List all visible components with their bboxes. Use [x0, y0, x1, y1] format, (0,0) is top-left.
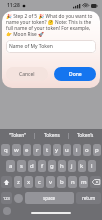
button[interactable]: h	[58, 160, 66, 172]
staticText: j	[71, 162, 73, 170]
staticText: s	[20, 162, 23, 170]
staticText: b	[60, 178, 64, 186]
button[interactable]: return	[76, 192, 101, 204]
staticText: Done	[69, 71, 82, 78]
button[interactable]: Cancel	[6, 67, 48, 81]
staticText: c	[38, 178, 41, 186]
staticText: m	[81, 178, 87, 186]
staticText: k	[80, 162, 84, 170]
staticText: q	[4, 146, 8, 154]
staticText: d	[30, 162, 34, 170]
button[interactable]: s	[17, 160, 26, 172]
button[interactable]: Token’s	[69, 129, 102, 142]
button[interactable]: a	[6, 160, 15, 172]
button[interactable]: j	[68, 160, 76, 172]
button[interactable]: e	[23, 144, 31, 156]
button[interactable]: m	[79, 176, 88, 188]
staticText: x	[27, 178, 31, 186]
staticText: t	[46, 146, 49, 154]
staticText: v	[49, 178, 53, 186]
button[interactable]: i	[73, 144, 81, 156]
staticText: Token’s	[77, 132, 94, 139]
staticText: n	[71, 178, 75, 186]
staticText: space	[43, 195, 56, 201]
staticText: u	[65, 146, 69, 154]
staticText: f	[41, 162, 44, 170]
button[interactable]: d	[28, 160, 36, 172]
staticText: w	[14, 146, 19, 154]
button[interactable]: k	[78, 160, 86, 172]
staticText: 11:28	[7, 2, 20, 9]
staticText: “Token”	[9, 132, 26, 139]
staticText: e	[25, 146, 29, 154]
staticText: 🎉 Step 2 of 5 🎉 What do you want to name…	[6, 13, 96, 37]
button[interactable]: g	[48, 160, 56, 172]
button[interactable]: Tokens	[35, 129, 68, 142]
button[interactable]: 123	[1, 192, 12, 204]
staticText: a	[9, 162, 13, 170]
staticText: y	[55, 146, 59, 154]
button[interactable]: c	[35, 176, 44, 188]
button[interactable]: Switch keyboard	[14, 194, 23, 203]
staticText: Name of My Token	[9, 43, 53, 50]
button[interactable]: u	[63, 144, 71, 156]
button[interactable]: p	[93, 144, 101, 156]
button[interactable]: b	[57, 176, 66, 188]
button[interactable]: n	[68, 176, 77, 188]
button[interactable]: Shift	[1, 176, 12, 188]
staticText: z	[17, 178, 20, 186]
button[interactable]: Emoji	[3, 207, 11, 215]
button[interactable]: l	[88, 160, 96, 172]
button[interactable]: q	[1, 144, 10, 156]
button[interactable]: Done	[54, 67, 96, 81]
staticText: Cancel	[19, 71, 35, 78]
button[interactable]: “Token”	[0, 129, 34, 142]
staticText: h	[60, 162, 64, 170]
staticText: Tokens	[44, 132, 60, 139]
button[interactable]: space	[25, 192, 74, 204]
button[interactable]: r	[33, 144, 41, 156]
button[interactable]: o	[83, 144, 91, 156]
staticText: 123	[3, 196, 10, 201]
staticText: r	[36, 146, 39, 154]
button[interactable]: Backspace	[90, 176, 101, 188]
button[interactable]: y	[53, 144, 61, 156]
button[interactable]: v	[46, 176, 55, 188]
staticText: p	[95, 146, 99, 154]
button[interactable]: z	[14, 176, 22, 188]
staticText: i	[76, 146, 78, 154]
button[interactable]: x	[24, 176, 33, 188]
button[interactable]: t	[43, 144, 51, 156]
staticText: return	[82, 195, 96, 201]
staticText: l	[91, 162, 93, 170]
button[interactable]: f	[38, 160, 46, 172]
button[interactable]: w	[12, 144, 21, 156]
staticText: o	[85, 146, 89, 154]
staticText: g	[50, 162, 54, 170]
